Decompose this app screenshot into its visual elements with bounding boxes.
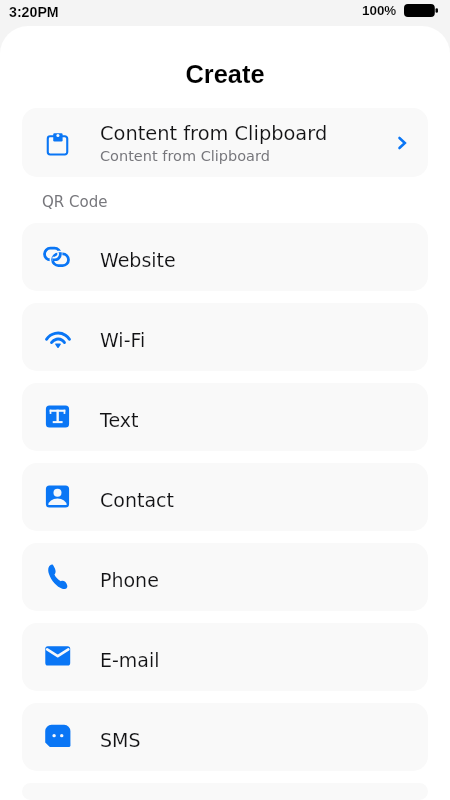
button[interactable]: Content from Clipboard	[22, 108, 428, 177]
staticText: Create	[0, 60, 450, 88]
button[interactable]: Create email QR code	[22, 623, 428, 691]
button[interactable]: Create SMS QR code	[22, 703, 428, 771]
button[interactable]: Create website QR code	[22, 223, 428, 291]
other: Create website QR code	[22, 240, 94, 274]
other: Create text QR code	[22, 400, 94, 434]
other: Create phone QR code	[22, 560, 94, 594]
staticText: E-mail	[100, 649, 160, 671]
staticText: SMS	[100, 729, 141, 751]
staticText: 100%	[362, 3, 397, 18]
staticText: Phone	[100, 569, 159, 591]
staticText: QR Code	[42, 193, 108, 210]
button[interactable]: Create contact QR code	[22, 463, 428, 531]
staticText: Text	[100, 409, 139, 431]
button[interactable]: Create text QR code	[22, 383, 428, 451]
staticText: Website	[100, 249, 176, 271]
staticText: Content from Clipboard	[100, 122, 328, 145]
other: Create email QR code	[22, 640, 94, 674]
staticText: 3:20PM	[9, 4, 59, 20]
other: Create contact QR code	[22, 480, 94, 514]
staticText: Contact	[100, 489, 174, 511]
staticText: Content from Clipboard	[100, 148, 270, 165]
staticText: Wi-Fi	[100, 329, 146, 351]
other: Create SMS QR code	[22, 720, 94, 754]
button[interactable]: Create Wi-Fi QR code	[22, 303, 428, 371]
other: Create Wi-Fi QR code	[22, 320, 94, 354]
button[interactable]: Create phone QR code	[22, 543, 428, 611]
